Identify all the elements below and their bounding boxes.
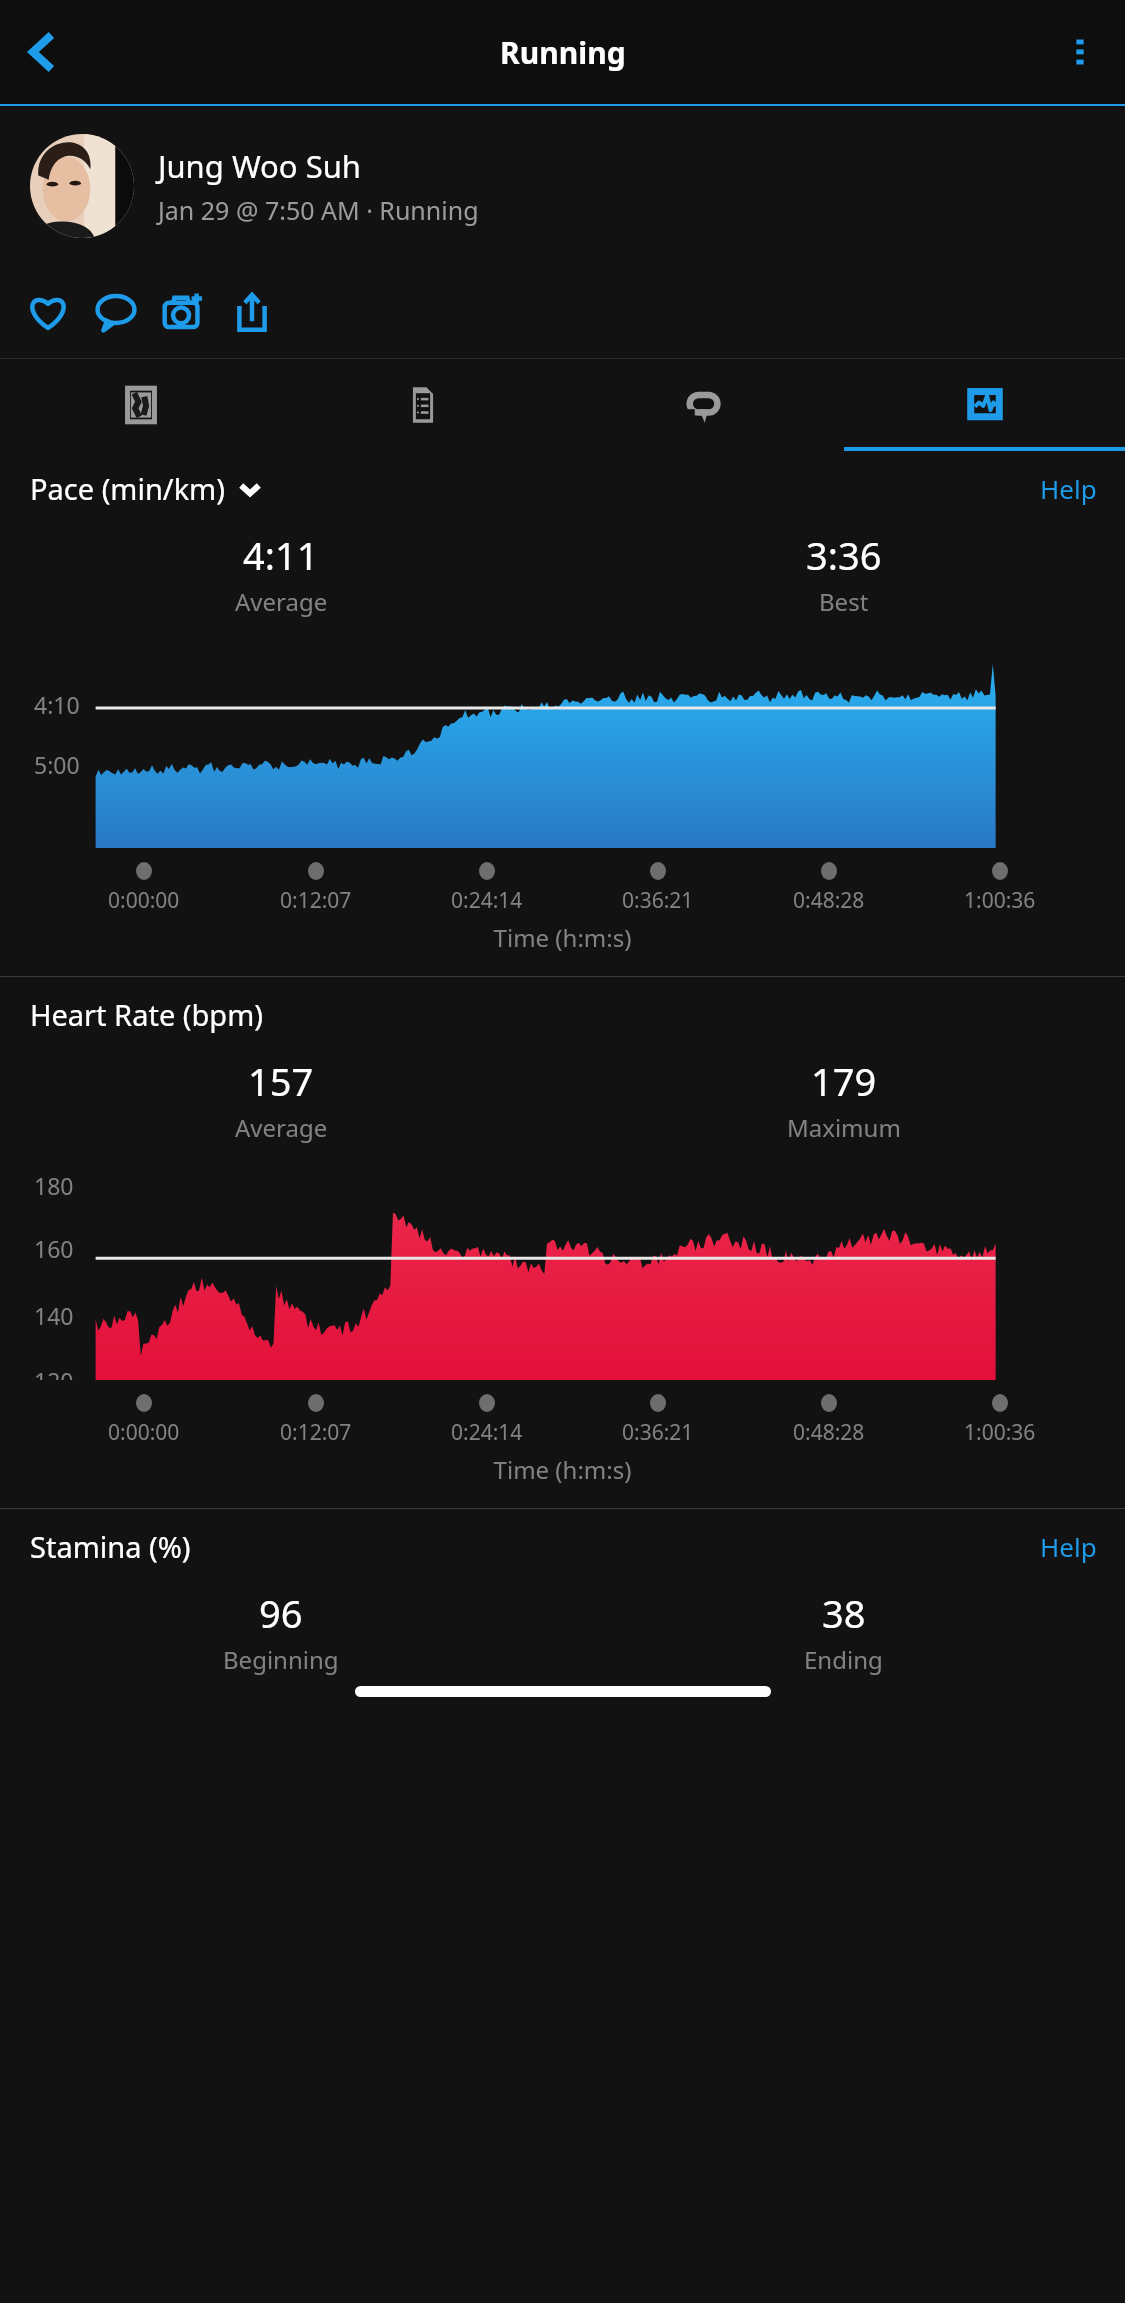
staticText: 4:11 — [243, 529, 319, 581]
button[interactable]: More options — [1047, 19, 1113, 85]
staticText: 1:00:36 — [964, 1418, 1036, 1447]
staticText: 179 — [811, 1055, 877, 1107]
staticText: Heart Rate (bpm) — [30, 995, 263, 1034]
button[interactable]: Stamina (%) — [30, 1527, 191, 1566]
button[interactable]: Charts — [844, 359, 1125, 451]
staticText: 38 — [822, 1587, 866, 1639]
button[interactable]: Details — [282, 359, 563, 451]
staticText: 0:24:14 — [451, 886, 523, 915]
button[interactable]: Pace (min/km) — [30, 469, 261, 508]
button[interactable]: Help — [1040, 1529, 1097, 1564]
staticText: Best — [819, 585, 869, 618]
staticText: 140 — [34, 1300, 74, 1331]
staticText: 0:12:07 — [280, 1418, 352, 1447]
button[interactable]: Like — [14, 278, 82, 346]
staticText: 3:36 — [806, 529, 882, 581]
button[interactable]: Help — [1040, 471, 1097, 506]
staticText: 4:10 — [34, 689, 80, 720]
staticText: Beginning — [223, 1643, 339, 1676]
staticText: Stamina (%) — [30, 1527, 191, 1566]
staticText: 0:48:28 — [793, 886, 865, 915]
button[interactable]: Back — [8, 19, 74, 85]
staticText: 0:12:07 — [280, 886, 352, 915]
button[interactable]: Comment — [82, 278, 150, 346]
staticText: Ending — [804, 1643, 883, 1676]
staticText: 0:24:14 — [451, 1418, 523, 1447]
staticText: Running — [500, 32, 626, 73]
staticText: 5:00 — [34, 749, 80, 780]
button[interactable]: Jung Woo Suh — [0, 106, 1125, 266]
staticText: 1:00:36 — [964, 886, 1036, 915]
button[interactable]: Map — [0, 359, 282, 451]
button[interactable]: Laps — [563, 359, 844, 451]
staticText: Average — [235, 1111, 328, 1144]
staticText: Jan 29 @ 7:50 AM · Running — [158, 193, 479, 227]
staticText: 0:00:00 — [108, 886, 180, 915]
staticText: 160 — [34, 1233, 74, 1264]
staticText: Maximum — [787, 1111, 901, 1144]
staticText: 0:36:21 — [622, 886, 694, 915]
button[interactable]: Add photo — [150, 278, 218, 346]
staticText: Time (h:m:s) — [0, 1453, 1125, 1486]
staticText: 120 — [34, 1365, 74, 1380]
staticText: 0:00:00 — [108, 1418, 180, 1447]
staticText: 0:36:21 — [622, 1418, 694, 1447]
staticText: 180 — [34, 1170, 74, 1201]
button[interactable]: Share — [218, 278, 286, 346]
staticText: Jung Woo Suh — [158, 145, 362, 187]
staticText: 0:48:28 — [793, 1418, 865, 1447]
staticText: Pace (min/km) — [30, 469, 225, 508]
button[interactable]: Heart Rate (bpm) — [30, 995, 263, 1034]
staticText: Time (h:m:s) — [0, 921, 1125, 954]
staticText: 96 — [259, 1587, 303, 1639]
staticText: Average — [235, 585, 328, 618]
staticText: 157 — [248, 1055, 314, 1107]
